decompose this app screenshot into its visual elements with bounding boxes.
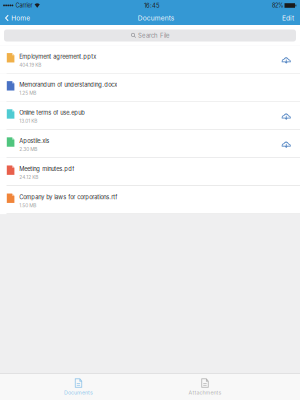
staticText: Online terms of use.epub [19, 109, 85, 116]
staticText: Carrier [13, 2, 34, 9]
staticText: Company by laws for corporations.rtf [19, 194, 117, 200]
staticText: 24.12 KB [19, 174, 38, 180]
button[interactable]: Documents [28, 374, 128, 400]
staticText: Documents [64, 389, 93, 396]
staticText: 13.01 KB [19, 118, 37, 124]
staticText: 1.50 MB [19, 202, 36, 208]
button[interactable]: Attachments [155, 374, 255, 400]
staticText: Meeting minutes.pdf [19, 165, 74, 172]
button[interactable]: Meeting minutes.pdf [0, 158, 300, 186]
staticText: Search File [138, 32, 169, 39]
button[interactable]: Edit [282, 11, 300, 25]
staticText: 2.30 MB [19, 146, 37, 152]
button[interactable]: Search File [0, 25, 300, 45]
staticText: Edit [282, 14, 294, 22]
button[interactable]: Employment agreement.pptx [0, 45, 300, 74]
staticText: Attachments [188, 389, 221, 396]
button[interactable]: Home [0, 11, 30, 25]
staticText: Employment agreement.pptx [19, 53, 96, 60]
staticText: 1.25 MB [19, 90, 36, 96]
staticText: 16:45 [144, 2, 160, 9]
button[interactable]: Memorandum of understanding.docx [0, 74, 300, 102]
button[interactable]: Apostile.xls [0, 130, 300, 158]
staticText: Documents [138, 14, 175, 22]
staticText: 404.19 KB [19, 62, 41, 68]
staticText: Memorandum of understanding.docx [19, 81, 117, 88]
button[interactable]: Company by laws for corporations.rtf [0, 186, 300, 214]
staticText: 82% [272, 2, 283, 9]
staticText: Home [11, 14, 30, 22]
staticText: Apostile.xls [19, 137, 49, 144]
button[interactable]: Online terms of use.epub [0, 102, 300, 130]
